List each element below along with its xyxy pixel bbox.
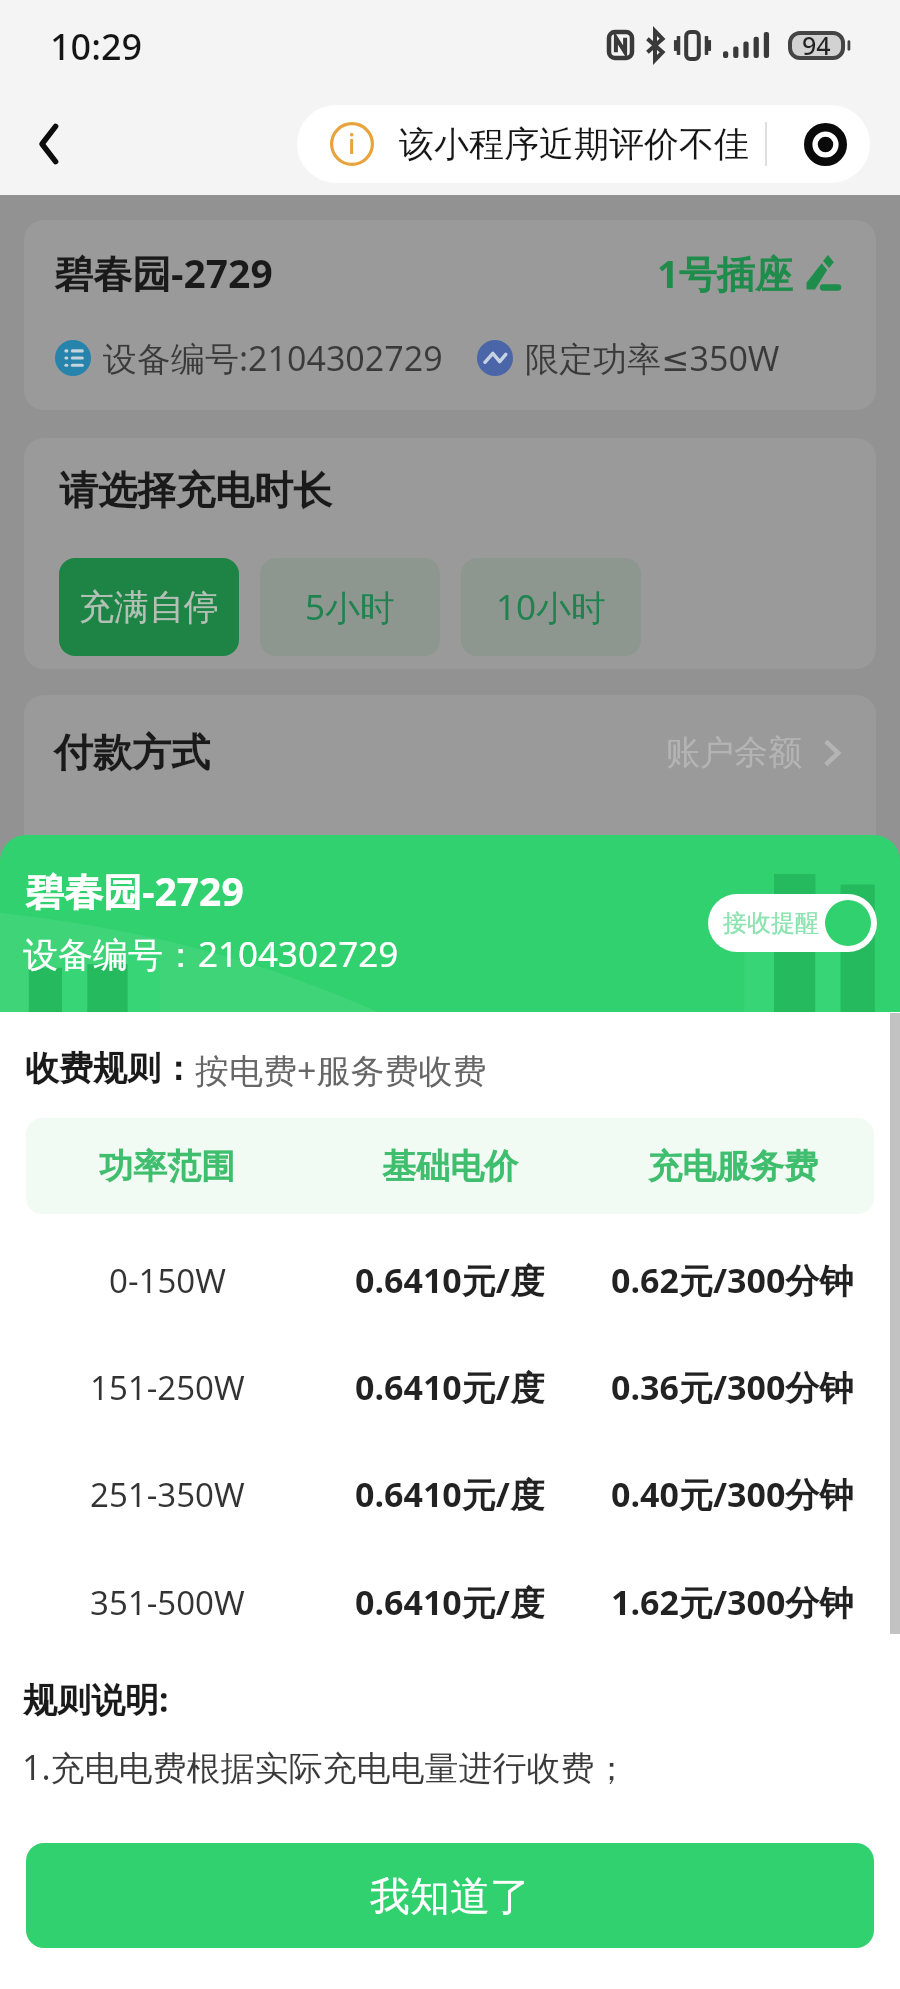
staticText: 充电服务费 [648,1145,818,1188]
staticText: 1.62元/300分钟 [611,1579,854,1625]
staticText: 我知道了 [370,1871,530,1921]
staticText: 规则说明: [23,1676,169,1722]
staticText: 限定功率≤350W [525,335,780,381]
staticText: 0-150W [109,1258,226,1303]
staticText: 按电费+服务费收费 [195,1047,487,1093]
staticText: 功率范围 [99,1145,235,1188]
staticText: 充满自停 [79,585,219,629]
staticText: 接收提醒 [723,908,819,938]
staticText: 收费规则： [25,1047,195,1090]
staticText: 1.充电电费根据实际充电电量进行收费； [22,1744,629,1790]
staticText: i [348,125,356,162]
button[interactable]: 我知道了 [26,1843,874,1948]
staticText: 251-350W [90,1472,245,1517]
staticText: 碧春园-2729 [25,864,244,917]
staticText: 0.40元/300分钟 [611,1471,854,1517]
staticText: 0.6410元/度 [355,1471,544,1517]
staticText: 151-250W [90,1365,245,1410]
staticText: 付款方式 [54,728,210,777]
button[interactable]: 5小时 [260,558,440,656]
staticText: 0.36元/300分钟 [611,1364,854,1410]
staticText: 请选择充电时长 [59,466,332,515]
staticText: 账户余额 [666,731,802,774]
button[interactable]: i [297,105,870,183]
button[interactable]: 10小时 [461,558,641,656]
staticText: 10:29 [50,22,143,71]
staticText: 基础电价 [382,1145,518,1188]
staticText: 0.6410元/度 [355,1579,544,1625]
staticText: 0.6410元/度 [355,1364,544,1410]
staticText: 94 [802,28,831,62]
button[interactable]: 接收提醒 [708,894,877,952]
staticText: 0.6410元/度 [355,1257,544,1303]
button[interactable]: 充满自停 [59,558,239,656]
staticText: 该小程序近期评价不佳 [399,122,749,166]
staticText: 碧春园-2729 [54,246,273,299]
staticText: 10小时 [496,583,607,631]
staticText: 设备编号:2104302729 [103,335,443,381]
staticText: 设备编号：2104302729 [23,930,399,978]
staticText: 351-500W [90,1580,245,1625]
staticText: 1号插座 [657,247,793,299]
staticText: 0.62元/300分钟 [611,1257,854,1303]
button[interactable]: Back [15,109,85,179]
staticText: 5小时 [305,583,396,631]
